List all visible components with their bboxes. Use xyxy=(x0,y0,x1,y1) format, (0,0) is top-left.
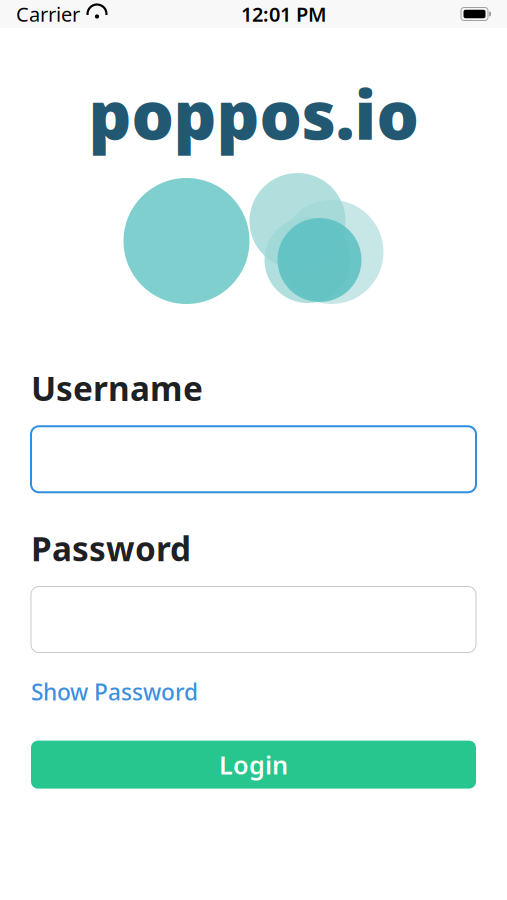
button[interactable]: Login xyxy=(31,741,476,789)
staticText: Username xyxy=(31,366,203,410)
staticText: Password xyxy=(31,526,191,571)
button[interactable]: Show Password xyxy=(31,670,198,713)
staticText: Show Password xyxy=(31,676,198,707)
staticText: Carrier xyxy=(16,1,80,27)
staticText: poppos.io xyxy=(88,70,418,158)
staticText: 12:01 PM xyxy=(241,1,327,27)
staticText: Login xyxy=(219,748,288,781)
